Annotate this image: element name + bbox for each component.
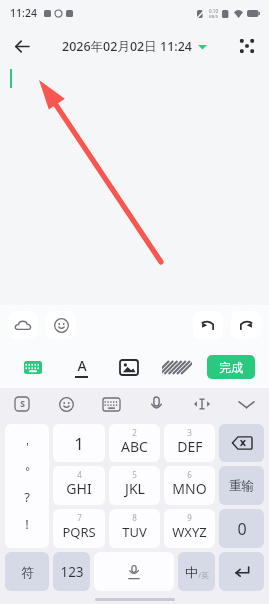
button[interactable]: 7: [53, 509, 105, 548]
staticText: !: [25, 515, 29, 533]
button[interactable]: 中: [178, 552, 215, 591]
staticText: 5: [132, 469, 137, 480]
button[interactable]: 5: [109, 466, 160, 505]
button[interactable]: 2: [109, 424, 160, 462]
staticText: MNO: [172, 479, 207, 498]
staticText: ': [26, 439, 29, 454]
staticText: 0.10: [209, 8, 218, 14]
button[interactable]: Grid view: [232, 31, 262, 61]
button[interactable]: 符: [5, 552, 49, 591]
button[interactable]: Cloud: [8, 311, 38, 339]
staticText: 1: [74, 432, 84, 455]
staticText: °: [25, 463, 30, 478]
button[interactable]: Undo: [193, 311, 223, 339]
staticText: GHI: [66, 479, 92, 498]
button[interactable]: Cursor control: [179, 388, 224, 420]
staticText: 8: [132, 512, 137, 523]
staticText: WXYZ: [172, 523, 207, 541]
button[interactable]: 2026年02月02日 11:24: [58, 36, 211, 57]
button[interactable]: 123: [53, 552, 90, 591]
button[interactable]: Emoji: [46, 311, 76, 339]
staticText: 完成: [219, 360, 243, 375]
button[interactable]: ': [5, 424, 49, 548]
button[interactable]: Emoji: [44, 388, 89, 420]
staticText: /英: [198, 570, 209, 580]
staticText: 0: [237, 518, 247, 540]
staticText: 2: [132, 427, 137, 438]
staticText: 符: [21, 564, 34, 580]
button[interactable]: Sogou: [0, 388, 44, 420]
button[interactable]: Insert image: [114, 352, 144, 382]
staticText: A: [77, 356, 87, 375]
staticText: 2026年02月02日 11:24: [62, 38, 192, 55]
staticText: DEF: [177, 437, 203, 456]
button[interactable]: Voice input: [134, 388, 179, 420]
button[interactable]: Delete: [219, 424, 264, 462]
button[interactable]: 6: [164, 466, 215, 505]
staticText: TUV: [122, 523, 147, 541]
button[interactable]: Back: [6, 31, 36, 61]
button[interactable]: 4: [53, 466, 105, 505]
staticText: KB/S: [209, 14, 218, 19]
staticText: 11:24: [10, 6, 37, 20]
button[interactable]: Handwriting: [162, 352, 192, 382]
staticText: ?: [24, 488, 30, 506]
staticText: ABC: [121, 437, 148, 456]
button[interactable]: Space: [94, 552, 174, 591]
staticText: 3: [187, 427, 192, 438]
staticText: 4: [77, 469, 82, 480]
staticText: 9: [187, 512, 192, 523]
button[interactable]: Enter: [219, 552, 264, 591]
staticText: 中: [185, 564, 198, 580]
button[interactable]: 1: [53, 424, 105, 462]
button[interactable]: 8: [109, 509, 160, 548]
button[interactable]: 重输: [219, 466, 264, 505]
button[interactable]: 3: [164, 424, 215, 462]
staticText: S: [20, 398, 25, 410]
button[interactable]: 完成: [207, 355, 255, 379]
button[interactable]: 0: [219, 509, 264, 548]
button[interactable]: Keyboard layout: [89, 388, 134, 420]
staticText: 重输: [229, 478, 254, 494]
button[interactable]: 9: [164, 509, 215, 548]
staticText: 6: [187, 469, 192, 480]
staticText: 7: [77, 512, 82, 523]
staticText: 123: [60, 563, 84, 581]
staticText: JKL: [125, 479, 145, 498]
button[interactable]: Keyboard: [18, 352, 48, 382]
button[interactable]: Redo: [231, 311, 261, 339]
button[interactable]: Hide keyboard: [224, 388, 269, 420]
button[interactable]: Text format: [66, 352, 96, 382]
staticText: PQRS: [62, 523, 96, 541]
